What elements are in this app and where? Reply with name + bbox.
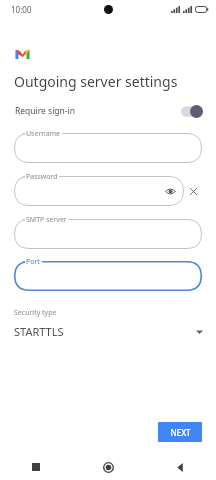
button[interactable]: Back <box>144 454 216 480</box>
button[interactable]: Username <box>14 133 202 163</box>
staticText: STARTTLS <box>14 324 64 339</box>
staticText: 10:00 <box>11 4 32 15</box>
staticText: Require sign-in <box>15 105 76 117</box>
button[interactable]: Home <box>72 454 144 480</box>
button[interactable]: Show password <box>164 185 177 198</box>
button[interactable]: Require sign-in <box>0 100 216 122</box>
button[interactable]: Security type <box>0 308 216 339</box>
button[interactable]: Clear password <box>187 185 200 198</box>
button[interactable]: Require sign-in <box>181 105 203 118</box>
button[interactable]: Port <box>14 261 202 291</box>
staticText: Password <box>26 172 58 182</box>
staticText: Port <box>26 257 40 267</box>
staticText: Username <box>26 129 61 139</box>
staticText: SMTP server <box>26 215 67 225</box>
button[interactable]: NEXT <box>158 422 202 442</box>
staticText: NEXT <box>170 427 191 438</box>
staticText: Security type <box>14 308 57 318</box>
button[interactable]: SMTP server <box>14 219 202 249</box>
staticText: Outgoing server settings <box>14 72 178 91</box>
button[interactable]: Password <box>14 176 184 206</box>
button[interactable]: Recents <box>0 454 72 480</box>
